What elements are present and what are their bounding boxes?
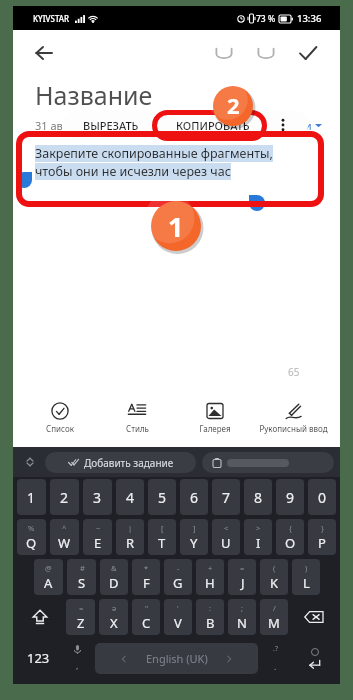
button[interactable]: КОПИРОВАТЬ	[158, 110, 268, 140]
button[interactable]: -	[164, 559, 192, 595]
staticText: }	[321, 523, 324, 533]
button[interactable]: 123	[17, 637, 60, 679]
staticText: |	[128, 523, 133, 533]
button[interactable]: #	[67, 559, 96, 595]
staticText: I	[256, 534, 261, 552]
staticText: .	[274, 660, 277, 672]
staticText: F	[143, 574, 150, 592]
button[interactable]: 8	[244, 479, 272, 515]
button[interactable]: Undo	[208, 37, 240, 69]
staticText: H	[205, 574, 215, 592]
button[interactable]: >	[244, 519, 272, 555]
button[interactable]: :	[196, 599, 224, 635]
staticText: V	[174, 614, 182, 632]
button[interactable]: %	[17, 519, 46, 555]
staticText: ВЫРЕЗАТЬ	[83, 118, 139, 133]
staticText: 4	[126, 488, 135, 507]
staticText: "	[145, 603, 149, 613]
button[interactable]: 0	[308, 479, 336, 515]
button[interactable]: /	[260, 599, 288, 635]
button[interactable]: &	[100, 559, 128, 595]
button[interactable]: <	[212, 519, 240, 555]
button[interactable]: 4	[116, 479, 144, 515]
button[interactable]: (	[260, 559, 288, 595]
staticText: =	[79, 603, 84, 613]
button[interactable]: ]	[180, 519, 208, 555]
button[interactable]: ~	[83, 519, 112, 555]
button[interactable]: .?	[258, 637, 293, 679]
staticText: %	[28, 523, 35, 533]
staticText: U	[221, 534, 231, 552]
button[interactable]: Expand	[19, 451, 41, 473]
button[interactable]: Enter	[293, 637, 336, 679]
button[interactable]: Добавить задание	[45, 452, 196, 473]
staticText: O	[285, 534, 296, 552]
button[interactable]: More options	[268, 110, 298, 140]
button[interactable]: 9	[276, 479, 304, 515]
staticText: ;	[241, 603, 244, 613]
staticText: R	[126, 534, 135, 552]
staticText: ]	[193, 523, 196, 533]
staticText: 6	[190, 488, 199, 507]
staticText: M	[268, 614, 280, 632]
staticText: Q	[26, 534, 37, 552]
staticText: {	[289, 523, 292, 533]
button[interactable]: 6	[180, 479, 208, 515]
button[interactable]: =	[66, 599, 95, 635]
button[interactable]: Стиль	[98, 393, 176, 443]
staticText: 1	[168, 208, 184, 245]
button[interactable]: =	[228, 559, 256, 595]
button[interactable]: }	[308, 519, 336, 555]
staticText: @	[45, 563, 52, 573]
staticText: KYIVSTAR	[33, 13, 70, 24]
staticText: L	[303, 574, 310, 592]
button[interactable]: @	[34, 559, 63, 595]
staticText: [	[161, 523, 164, 533]
staticText: .?	[273, 644, 278, 654]
button[interactable]: *	[132, 559, 160, 595]
button[interactable]: 7	[212, 479, 240, 515]
button[interactable]: |	[116, 519, 144, 555]
button[interactable]: Backspace	[290, 597, 338, 637]
button[interactable]: Done	[292, 37, 324, 69]
staticText: Стиль	[126, 423, 149, 434]
button[interactable]: +	[196, 559, 224, 595]
button[interactable]: 1	[17, 479, 46, 515]
button[interactable]: Список	[21, 393, 98, 443]
staticText: P	[318, 534, 326, 552]
button[interactable]: Redo	[250, 37, 282, 69]
button[interactable]: )	[292, 559, 320, 595]
button[interactable]: ;	[228, 599, 256, 635]
staticText: Z	[77, 614, 85, 632]
staticText: Рукописный ввод	[259, 423, 328, 434]
button[interactable]: 5	[148, 479, 176, 515]
staticText: C	[142, 614, 151, 632]
button[interactable]: "	[132, 599, 160, 635]
button[interactable]	[202, 452, 334, 473]
staticText: 2	[60, 488, 69, 507]
button[interactable]: 2	[50, 479, 79, 515]
button[interactable]: Back	[27, 36, 61, 70]
staticText: 3	[93, 488, 102, 507]
button[interactable]: '	[164, 599, 192, 635]
staticText: 1	[27, 488, 36, 507]
button[interactable]: Shift	[15, 597, 64, 637]
button[interactable]: ^	[50, 519, 79, 555]
button[interactable]: Галерея	[176, 393, 254, 443]
button[interactable]: [	[148, 519, 176, 555]
staticText: English (UK)	[146, 651, 208, 666]
button[interactable]: Рукописный ввод	[254, 393, 332, 443]
staticText: +	[208, 563, 213, 573]
staticText: Галерея	[199, 423, 231, 434]
button[interactable]: Voice input	[60, 637, 95, 679]
button[interactable]: {	[276, 519, 304, 555]
button[interactable]: 3	[83, 479, 112, 515]
staticText: ии	[298, 118, 312, 133]
button[interactable]: English (UK)	[95, 643, 258, 674]
staticText: чтобы они не исчезли через час	[35, 163, 231, 180]
staticText: <	[224, 523, 229, 533]
staticText: 0	[318, 488, 327, 507]
staticText: E	[94, 534, 102, 552]
button[interactable]: ə	[99, 599, 128, 635]
button[interactable]: ВЫРЕЗАТЬ	[63, 110, 158, 140]
